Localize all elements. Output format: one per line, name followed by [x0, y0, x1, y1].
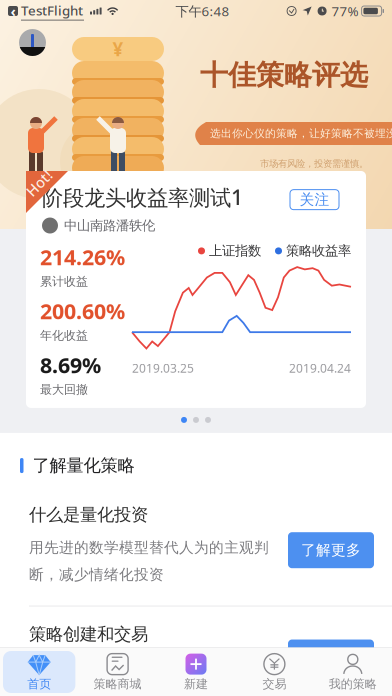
button[interactable]: 策略商城	[78, 648, 157, 696]
staticText: 8.69%	[40, 351, 101, 379]
button[interactable]: 交易	[235, 648, 314, 696]
staticText: Hot!	[24, 173, 54, 193]
staticText: 新建	[184, 677, 208, 691]
staticText: 200.60%	[40, 297, 125, 325]
staticText: 累计收益	[40, 274, 88, 289]
staticText: 最大回撤	[40, 382, 88, 397]
staticText: 阶段龙头收益率测试1	[42, 183, 243, 211]
staticText: 2019.03.25	[132, 360, 194, 376]
staticText: TestFlight	[21, 1, 83, 19]
staticText: 策略商城	[94, 677, 142, 691]
staticText: 首页	[27, 677, 51, 691]
staticText: 交易	[262, 677, 286, 691]
staticText: 了解更多	[301, 648, 361, 666]
staticText: 2019.04.24	[289, 360, 351, 376]
staticText: 用先进的数学模型替代人为的主观判	[29, 538, 269, 556]
button[interactable]: 了解更多	[288, 639, 374, 675]
staticText: 77%	[332, 2, 359, 20]
button[interactable]: 关注	[290, 190, 339, 210]
staticText: 策略收益率	[286, 243, 351, 259]
staticText: 策略创建和交易	[29, 623, 148, 645]
staticText: 十佳策略评选	[200, 58, 368, 92]
staticText: 了解更多	[301, 541, 361, 559]
staticText: ‹	[10, 1, 15, 21]
staticText: ¥	[112, 37, 123, 61]
staticText: 市场有风险，投资需谨慎。	[260, 158, 368, 169]
staticText: 中山南路潘轶伦	[64, 217, 155, 234]
staticText: 关注	[299, 191, 329, 209]
staticText: 了解量化策略	[32, 455, 134, 476]
button[interactable]: 首页	[0, 648, 78, 696]
staticText: 断，减少情绪化投资	[29, 565, 164, 583]
staticText: 什么是量化投资	[29, 504, 148, 525]
button[interactable]: 新建	[157, 648, 235, 696]
staticText: 上证指数	[209, 243, 261, 259]
button[interactable]: 了解更多	[288, 532, 374, 568]
staticText: 选出你心仪的策略，让好策略不被埋没	[210, 127, 392, 140]
staticText: 我的策略	[329, 677, 377, 691]
staticText: 下午6:48	[176, 2, 230, 20]
staticText: 年化收益	[40, 328, 88, 343]
staticText: 214.26%	[40, 243, 125, 271]
button[interactable]: 我的策略	[314, 648, 392, 696]
